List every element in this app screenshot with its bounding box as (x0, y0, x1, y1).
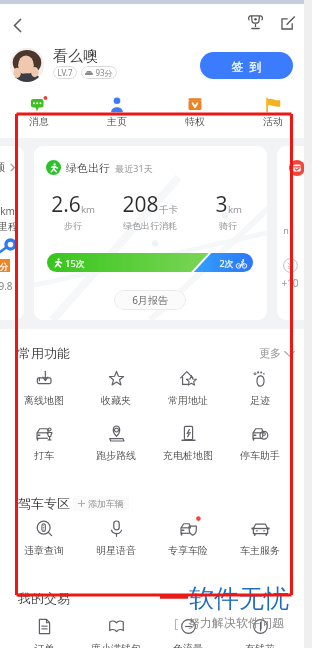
staticText: 跑步路线 (96, 449, 136, 462)
staticText: 93分 (95, 67, 113, 78)
staticText: 免流量 (173, 642, 203, 648)
staticText: 收藏夹 (101, 394, 131, 407)
button[interactable]: 专享车险 (154, 518, 222, 566)
button[interactable]: Edit profile (275, 10, 300, 35)
staticText: 最近31天 (115, 162, 153, 174)
button[interactable]: 违章查询 (10, 518, 78, 566)
staticText: 充电桩地图 (163, 449, 213, 462)
staticText: 驾车专区 (18, 495, 70, 511)
staticText: 看么噢 (53, 47, 98, 66)
staticText: 常用地址 (168, 394, 208, 407)
staticText: 15次 (65, 257, 85, 269)
button[interactable]: LV.7 (57, 66, 73, 79)
staticText: 有钱花 (245, 642, 275, 648)
staticText: LV.7 (57, 67, 73, 78)
button[interactable]: 特权 (167, 95, 223, 129)
button[interactable]: 车主服务 (226, 518, 294, 566)
button[interactable]: 绿色出行 (34, 146, 267, 320)
staticText: 9.8 (0, 279, 13, 293)
staticText: 添加车辆 (88, 498, 124, 509)
staticText: 8分 (0, 260, 9, 272)
button[interactable]: 停车助手 (226, 423, 294, 471)
staticText: 足迹 (250, 394, 270, 407)
staticText: 车主服务 (240, 544, 280, 557)
staticText: 绿色出行 (66, 161, 110, 175)
button[interactable]: 免流量 (154, 616, 222, 648)
staticText: 骑行 (219, 220, 237, 231)
staticText: 软件无忧 (189, 583, 289, 614)
staticText: 2.6 (51, 190, 81, 219)
staticText: km (0, 204, 15, 218)
staticText: 订单 (34, 642, 54, 648)
staticText: n (283, 224, 289, 236)
button[interactable]: Achievements (243, 10, 268, 35)
staticText: 常用功能 (18, 345, 70, 361)
button[interactable]: Back (3, 11, 31, 39)
button[interactable]: 更多 (259, 346, 295, 360)
button[interactable]: 足迹 (226, 368, 294, 416)
button[interactable]: 打车 (10, 423, 78, 471)
staticText: 我的交易 (18, 590, 70, 606)
button[interactable]: 明星语音 (82, 518, 150, 566)
staticText: 6月报告 (132, 293, 168, 307)
staticText: 里程 (0, 220, 18, 233)
staticText: 专享车险 (168, 544, 208, 557)
staticText: 度小满钱包 (91, 642, 141, 648)
button[interactable]: 顾 (0, 146, 24, 320)
staticText: +10 (281, 276, 299, 290)
staticText: 消息 (29, 115, 49, 128)
staticText: 绿色出行消耗 (123, 220, 177, 231)
staticText: 停车助手 (240, 449, 280, 462)
button[interactable]: 签 到 (200, 52, 293, 79)
button[interactable]: 有钱花 (226, 616, 294, 648)
button[interactable]: 度小满钱包 (82, 616, 150, 648)
staticText: 步行 (64, 220, 82, 231)
staticText: 打车 (34, 449, 54, 462)
button[interactable]: 常用地址 (154, 368, 222, 416)
staticText: 主页 (107, 115, 127, 128)
staticText: 违章查询 (24, 544, 64, 557)
staticText: 离线地图 (24, 394, 64, 407)
staticText: km (81, 203, 95, 216)
staticText: 特权 (185, 115, 205, 128)
button[interactable]: 主页 (89, 95, 145, 129)
button[interactable]: 活动 (245, 95, 301, 129)
button[interactable]: 离线地图 (10, 368, 78, 416)
button[interactable]: 订单 (10, 616, 78, 648)
staticText: 明星语音 (96, 544, 136, 557)
button[interactable]: 添加车辆 (78, 496, 124, 511)
button[interactable]: 消息 (11, 95, 67, 129)
staticText: 顾 (0, 160, 5, 174)
staticText: 2次 (219, 257, 234, 269)
button[interactable]: 收藏夹 (82, 368, 150, 416)
button[interactable]: Profile avatar (10, 48, 44, 82)
staticText: [ (174, 615, 178, 631)
button[interactable]: 充电桩地图 (154, 423, 222, 471)
staticText: 3 (215, 190, 228, 219)
staticText: km (228, 203, 242, 216)
staticText: 活动 (263, 115, 283, 128)
button[interactable]: 93分 (85, 66, 113, 79)
staticText: 努力解决软件问题 (188, 615, 284, 630)
button[interactable]: n (277, 146, 312, 320)
staticText: 千卡 (159, 204, 178, 216)
staticText: 签 到 (231, 58, 262, 74)
staticText: 208 (122, 190, 159, 219)
button[interactable]: 6月报告 (114, 290, 186, 310)
button[interactable]: 跑步路线 (82, 423, 150, 471)
staticText: 更多 (259, 346, 281, 360)
